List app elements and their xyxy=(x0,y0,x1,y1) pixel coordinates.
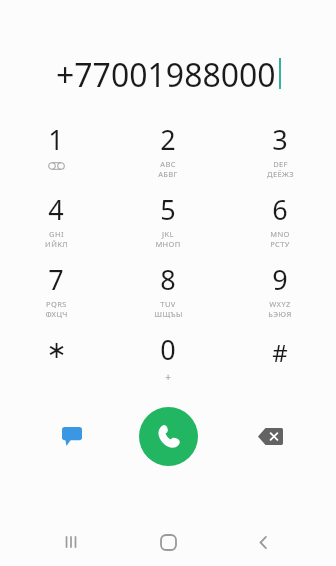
staticText: ABC xyxy=(160,159,176,169)
staticText: 9 xyxy=(272,261,288,298)
button[interactable]: Call xyxy=(139,407,198,466)
button[interactable]: 6 xyxy=(224,189,336,259)
button[interactable]: Recent apps xyxy=(49,520,93,564)
staticText: GHI xyxy=(49,229,64,239)
button[interactable]: Home xyxy=(146,520,190,564)
staticText: АБВГ xyxy=(158,169,178,179)
staticText: DEF xyxy=(273,159,288,169)
button[interactable]: Send message xyxy=(48,412,96,460)
staticText: 1 xyxy=(48,121,64,158)
staticText: WXYZ xyxy=(269,299,291,309)
button[interactable]: 3 xyxy=(224,119,336,189)
button[interactable]: 5 xyxy=(112,189,224,259)
button[interactable]: 0 xyxy=(112,329,224,399)
staticText: ДЕЁЖЗ xyxy=(267,169,294,179)
button[interactable]: ∗ xyxy=(0,329,112,399)
staticText: 5 xyxy=(160,191,176,228)
staticText: 7 xyxy=(48,261,64,298)
staticText: РСТУ xyxy=(270,239,290,249)
button[interactable]: 7 xyxy=(0,259,112,329)
staticText: 0 xyxy=(160,331,176,368)
staticText: # xyxy=(272,336,288,369)
staticText: ШЩЪЫ xyxy=(154,309,183,319)
staticText: TUV xyxy=(160,299,176,309)
staticText: ЬЭЮЯ xyxy=(268,309,292,319)
button[interactable]: # xyxy=(224,329,336,399)
button[interactable]: 4 xyxy=(0,189,112,259)
staticText: 2 xyxy=(160,121,176,158)
staticText: ИЙКЛ xyxy=(45,239,68,249)
staticText: + xyxy=(165,370,171,384)
staticText: +77001988000 xyxy=(56,53,276,93)
button[interactable]: 1 xyxy=(0,119,112,189)
staticText: 8 xyxy=(160,261,176,298)
button[interactable]: 2 xyxy=(112,119,224,189)
button[interactable]: 8 xyxy=(112,259,224,329)
staticText: MNO xyxy=(270,229,290,239)
staticText: 6 xyxy=(272,191,288,228)
staticText: 3 xyxy=(272,121,288,158)
staticText: PQRS xyxy=(46,299,67,309)
staticText: JKL xyxy=(162,229,174,239)
button[interactable]: Back xyxy=(241,520,285,564)
staticText: ФХЦЧ xyxy=(45,309,68,319)
button[interactable]: 9 xyxy=(224,259,336,329)
staticText: ∗ xyxy=(46,336,67,364)
button[interactable]: Backspace xyxy=(246,412,294,460)
staticText: МНОП xyxy=(155,239,181,249)
staticText: 4 xyxy=(48,191,64,228)
